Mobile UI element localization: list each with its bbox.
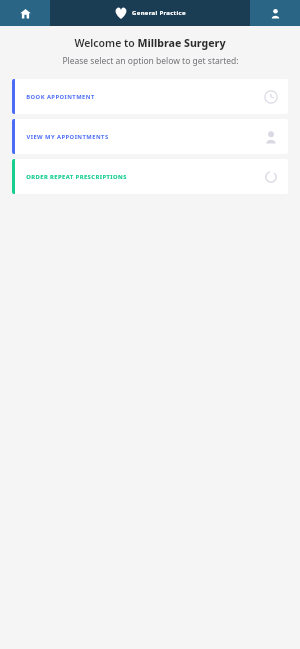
staticText: General Practice: [132, 9, 186, 17]
button[interactable]: VIEW MY APPOINTMENTS: [12, 119, 288, 154]
button[interactable]: ORDER REPEAT PRESCRIPTIONS: [12, 159, 288, 194]
staticText: ORDER REPEAT PRESCRIPTIONS: [26, 173, 127, 181]
button[interactable]: General Practice: [50, 0, 250, 26]
button[interactable]: Account: [250, 0, 300, 26]
staticText: BOOK APPOINTMENT: [26, 93, 95, 101]
button[interactable]: Home: [0, 0, 50, 26]
button[interactable]: BOOK APPOINTMENT: [12, 79, 288, 114]
staticText: VIEW MY APPOINTMENTS: [26, 133, 109, 141]
staticText: Please select an option below to get sta…: [62, 55, 239, 67]
staticText: Welcome to Millbrae Surgery: [74, 36, 226, 50]
